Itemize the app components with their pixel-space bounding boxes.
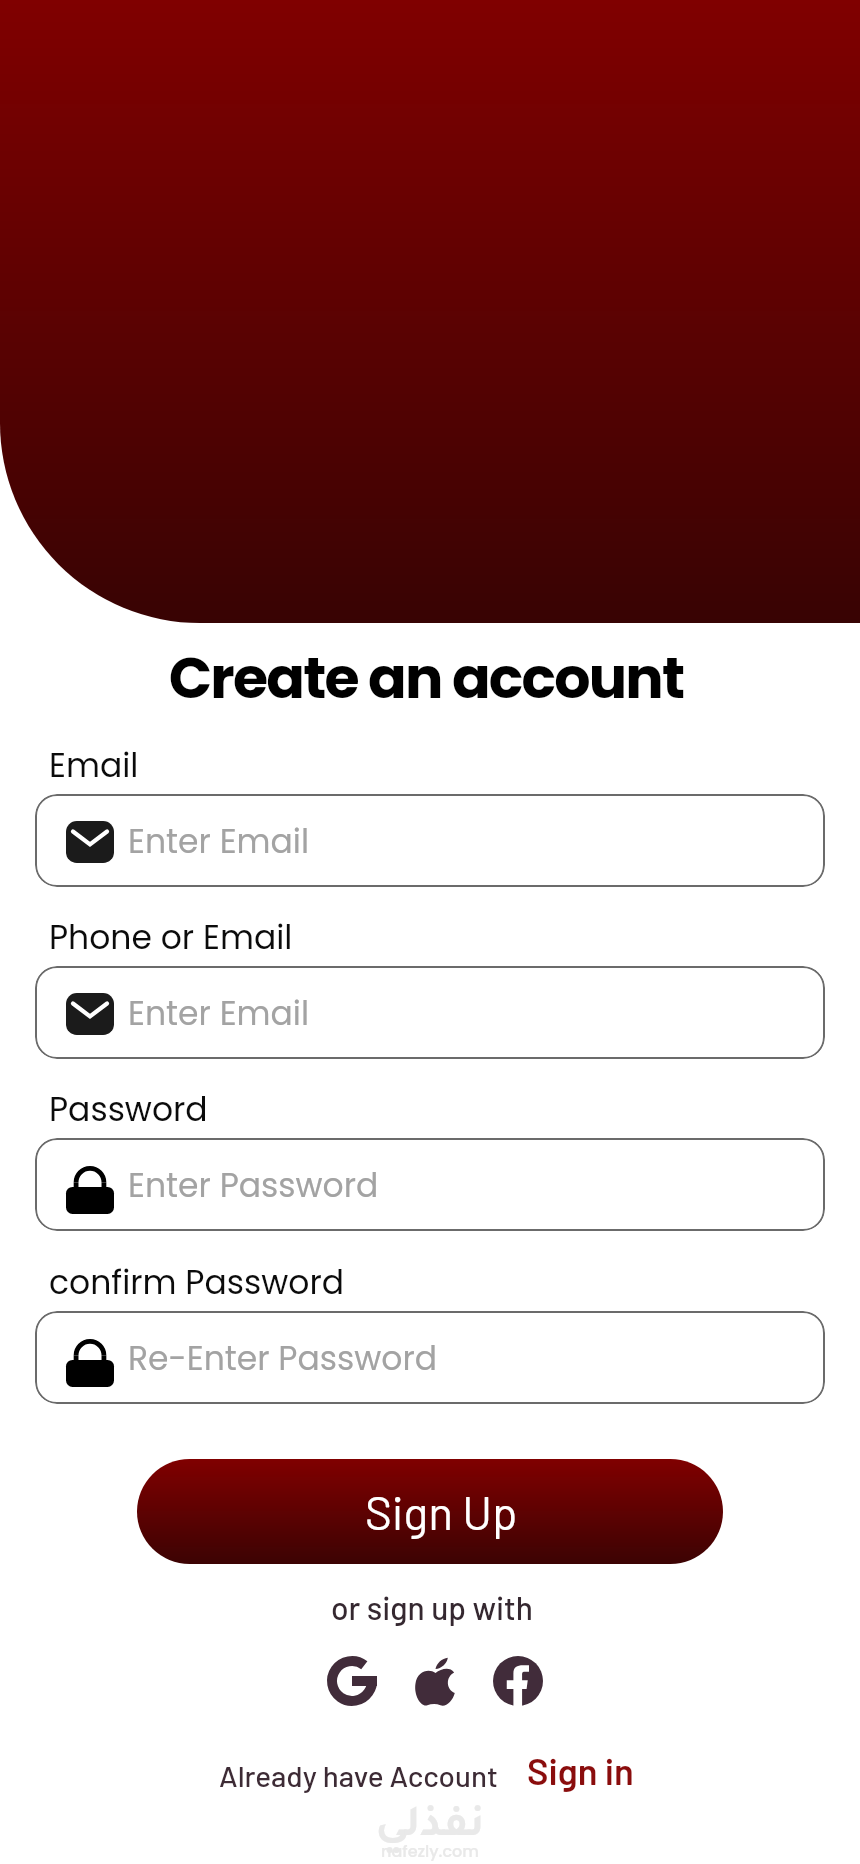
button[interactable]: Sign up with Apple — [405, 1651, 465, 1711]
staticText: Enter Email — [128, 818, 310, 864]
staticText: Create an account — [0, 638, 856, 718]
staticText: Enter Email — [128, 990, 310, 1036]
staticText: Already have Account — [219, 1757, 498, 1793]
button[interactable]: Enter Password — [35, 1138, 825, 1231]
button[interactable]: Sign Up — [137, 1459, 723, 1564]
button[interactable]: Re-Enter Password — [35, 1311, 825, 1404]
staticText: Sign Up — [365, 1484, 518, 1539]
staticText: Re-Enter Password — [128, 1335, 438, 1381]
button[interactable]: Sign in — [527, 1749, 634, 1793]
staticText: confirm Password — [49, 1259, 345, 1305]
button[interactable]: Enter Email — [35, 794, 825, 887]
staticText: Email — [49, 742, 139, 788]
staticText: or sign up with — [2, 1588, 860, 1626]
button[interactable]: Sign up with Google — [322, 1651, 382, 1711]
button[interactable]: Enter Email — [35, 966, 825, 1059]
button[interactable]: Sign up with Facebook — [488, 1651, 548, 1711]
staticText: نفذلي — [0, 1807, 860, 1851]
staticText: Sign in — [527, 1749, 634, 1793]
staticText: Password — [49, 1086, 208, 1132]
staticText: Enter Password — [128, 1162, 379, 1208]
staticText: Phone or Email — [49, 914, 293, 960]
staticText: nafezly.com — [0, 1840, 860, 1862]
